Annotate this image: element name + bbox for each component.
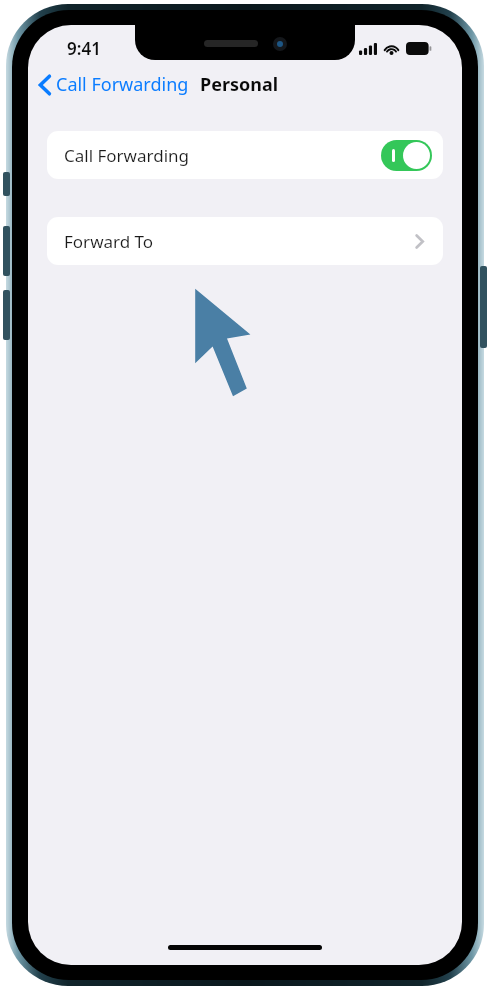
staticText: 9:41 xyxy=(67,37,101,60)
button[interactable]: Call Forwarding switch, on xyxy=(381,140,432,171)
button[interactable]: Forward To xyxy=(47,217,443,265)
staticText: Call Forwarding xyxy=(56,72,189,97)
staticText: Personal xyxy=(200,72,279,97)
staticText: Forward To xyxy=(64,230,154,253)
staticText: Call Forwarding xyxy=(64,144,189,167)
button[interactable]: Call Forwarding xyxy=(47,131,443,179)
button[interactable]: Call Forwarding xyxy=(34,65,193,104)
